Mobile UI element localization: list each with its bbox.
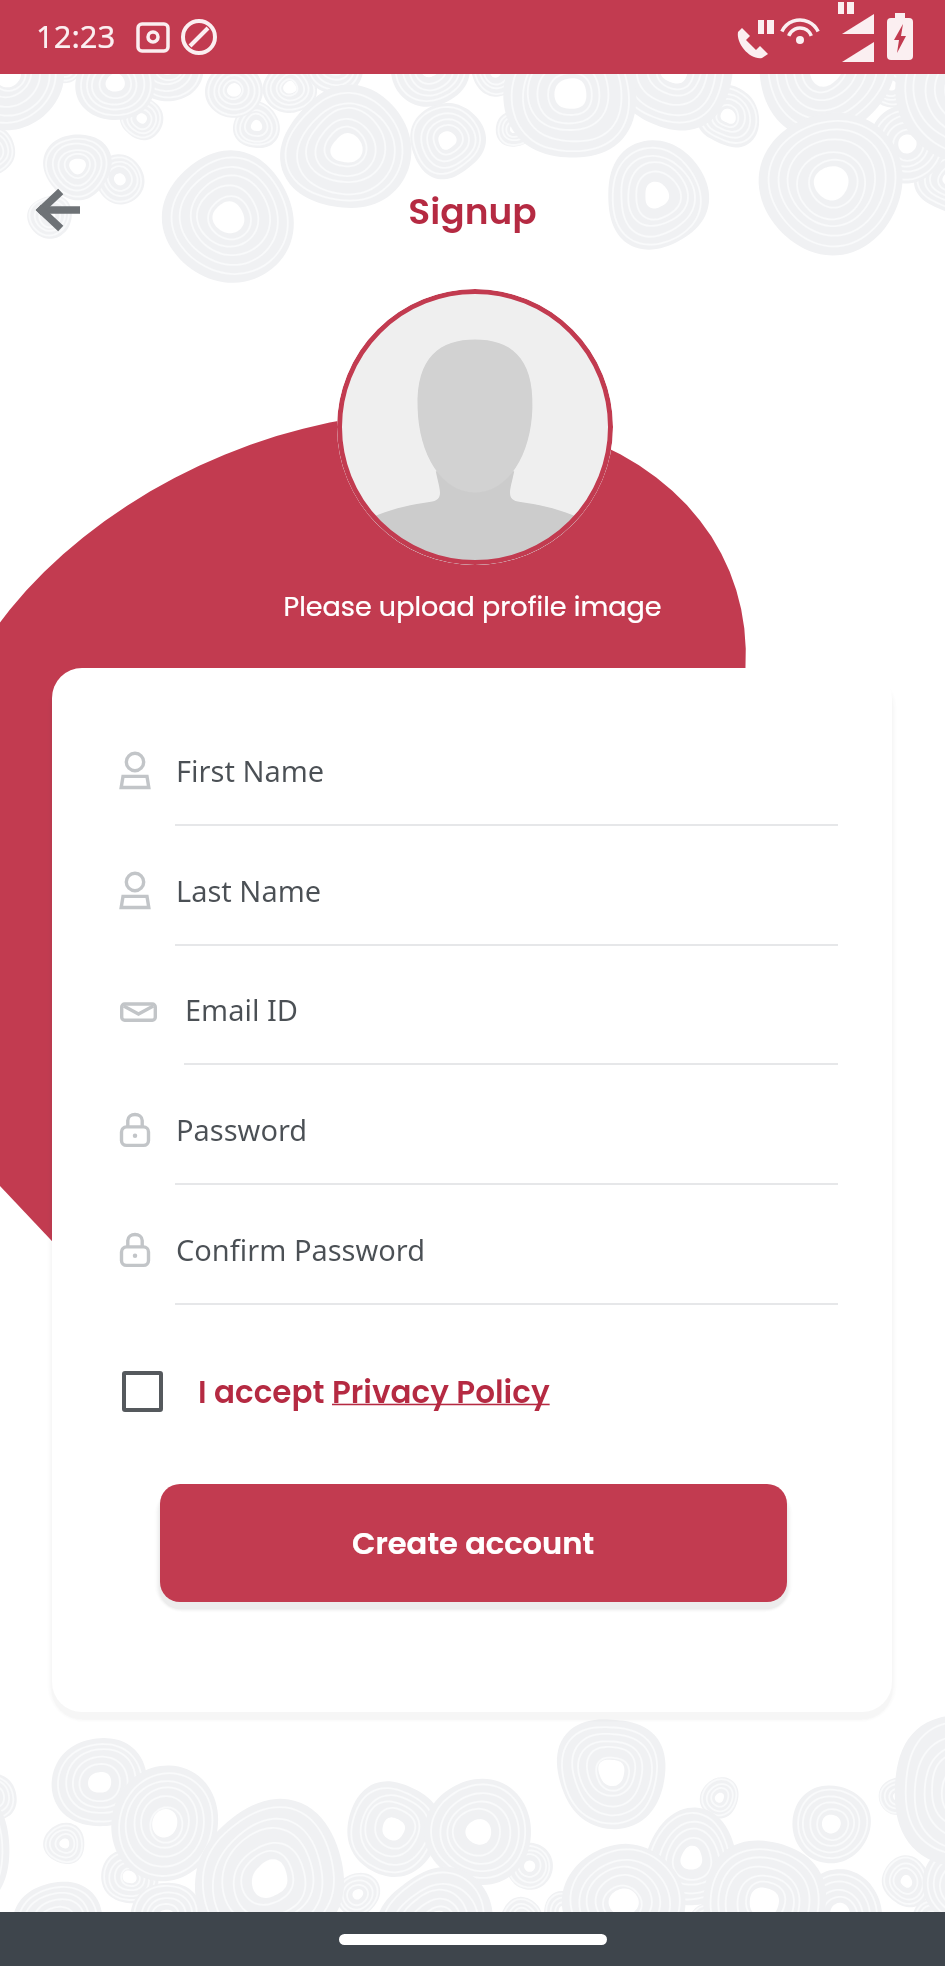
button[interactable]: Confirm Password bbox=[52, 1186, 892, 1304]
button[interactable]: Email ID bbox=[52, 946, 892, 1064]
button[interactable]: I accept bbox=[122, 1362, 550, 1420]
staticText: Create account bbox=[352, 1522, 595, 1565]
staticText: I accept bbox=[198, 1370, 332, 1413]
staticText: Password bbox=[176, 1110, 308, 1149]
button[interactable]: Last Name bbox=[52, 827, 892, 945]
staticText: First Name bbox=[176, 751, 325, 790]
button[interactable]: Upload profile image bbox=[337, 289, 613, 565]
staticText: Email ID bbox=[185, 990, 299, 1029]
staticText: Please upload profile image bbox=[0, 588, 945, 626]
button[interactable]: Create account bbox=[160, 1484, 787, 1602]
staticText: Last Name bbox=[176, 871, 322, 910]
button[interactable]: First Name bbox=[52, 707, 892, 825]
staticText: Signup bbox=[0, 186, 945, 236]
staticText: Privacy Policy bbox=[332, 1370, 550, 1413]
button[interactable]: Back bbox=[20, 170, 100, 250]
staticText: 12:23 bbox=[36, 15, 116, 57]
staticText: Confirm Password bbox=[176, 1230, 426, 1269]
button[interactable]: Password bbox=[52, 1066, 892, 1184]
